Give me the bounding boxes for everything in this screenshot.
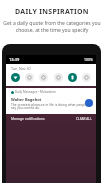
staticText: Tue, Nov 30	[11, 66, 31, 71]
staticText: 13:39	[9, 57, 20, 62]
button[interactable]: CLEAR ALL	[76, 117, 92, 121]
button[interactable]: ROTATE	[39, 73, 48, 82]
button[interactable]: Daily Messages • Motivation	[6, 88, 96, 114]
staticText: DAILY INSPIRATION	[15, 7, 89, 17]
button[interactable]: BATT	[54, 73, 63, 82]
staticText: Get a daily quote from the categories yo…	[3, 20, 101, 34]
button[interactable]: Manage notifications	[11, 116, 45, 121]
button[interactable]: WIFI	[11, 73, 20, 82]
staticText: Walter Bagehot	[11, 97, 42, 102]
staticText: Daily Messages • Motivation	[15, 90, 56, 94]
button[interactable]: PLANE	[82, 73, 91, 82]
button[interactable]: MOON	[25, 73, 34, 82]
staticText: The greatest pleasure in life is doing w…	[11, 102, 88, 110]
button[interactable]: TORCH	[68, 73, 77, 82]
staticText: 100%	[84, 57, 93, 62]
